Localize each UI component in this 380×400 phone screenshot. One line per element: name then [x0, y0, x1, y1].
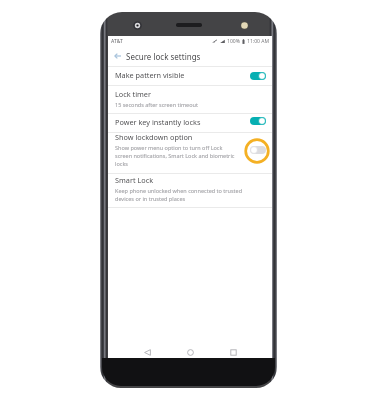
staticText: Secure lock settings — [126, 51, 201, 62]
button[interactable]: Back — [138, 343, 156, 361]
staticText: AT&T — [111, 38, 123, 45]
staticText: Make pattern visible — [115, 70, 185, 80]
staticText: 15 seconds after screen timeout — [115, 101, 198, 108]
button[interactable] — [108, 173, 272, 206]
button[interactable]: Switch off — [250, 146, 266, 154]
button[interactable]: Switch on — [250, 72, 266, 80]
button[interactable]: Home — [181, 343, 199, 361]
button[interactable] — [108, 66, 272, 85]
button[interactable] — [108, 132, 272, 174]
staticText: Keep phone unlocked when connected to tr… — [115, 187, 243, 203]
staticText: Show power menu option to turn off Lock … — [115, 144, 235, 168]
button[interactable] — [108, 85, 272, 113]
button[interactable]: Switch on — [250, 117, 266, 125]
button[interactable] — [108, 113, 272, 132]
staticText: Smart Lock — [115, 175, 154, 185]
button[interactable]: Recent apps — [224, 343, 242, 361]
staticText: 11:00 AM — [247, 38, 270, 45]
staticText: 100% — [227, 38, 240, 45]
staticText: Lock timer — [115, 89, 152, 99]
button[interactable]: Navigate up — [111, 50, 123, 62]
staticText: Power key instantly locks — [115, 117, 201, 127]
staticText: Show lockdown option — [115, 132, 193, 142]
